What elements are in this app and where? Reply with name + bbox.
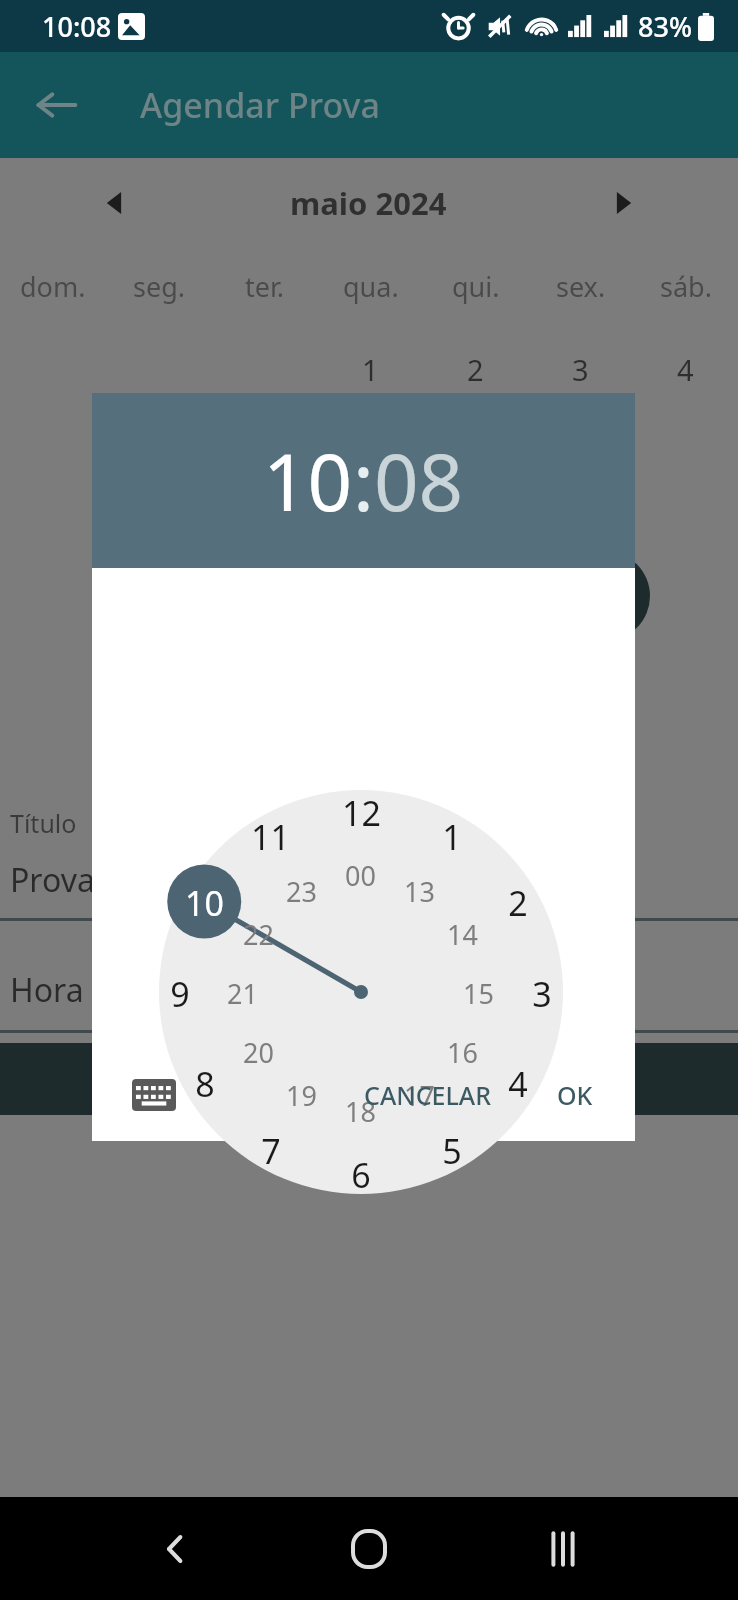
button[interactable]: Next month xyxy=(600,180,646,226)
button[interactable]: 20 xyxy=(242,1034,275,1068)
staticText: 22 xyxy=(243,916,274,950)
button[interactable]: 4 xyxy=(507,1061,528,1104)
staticText: dom. xyxy=(20,268,86,305)
button[interactable]: 19 xyxy=(285,1077,318,1111)
button[interactable]: 2 xyxy=(507,880,528,923)
staticText: ter. xyxy=(245,268,285,305)
staticText: 20 xyxy=(243,1034,274,1068)
button[interactable]: 12 xyxy=(340,790,382,833)
button[interactable]: 10 xyxy=(183,880,225,923)
staticText: 83% xyxy=(638,8,692,45)
button[interactable]: 22 xyxy=(242,916,275,950)
button[interactable]: OK xyxy=(541,1066,609,1124)
button[interactable]: Switch to keyboard input xyxy=(128,1073,180,1117)
staticText: 5 xyxy=(442,1128,462,1171)
button[interactable]: 11 xyxy=(249,814,291,857)
staticText: 8 xyxy=(195,1061,215,1104)
staticText: 15 xyxy=(463,975,494,1009)
staticText: 13 xyxy=(404,873,435,907)
staticText: 17 xyxy=(404,1077,435,1111)
staticText: 16 xyxy=(447,1034,478,1068)
button[interactable]: Recent apps xyxy=(528,1514,598,1584)
button[interactable]: 1 xyxy=(441,814,462,857)
staticText: sáb. xyxy=(660,268,712,305)
button[interactable]: 6 xyxy=(350,1152,371,1195)
button[interactable]: 23 xyxy=(285,873,318,907)
button[interactable]: 21 xyxy=(226,975,259,1009)
button[interactable]: CANCELAR xyxy=(348,1066,507,1124)
staticText: 1 xyxy=(442,814,462,857)
button[interactable]: Previous month xyxy=(92,180,138,226)
staticText: qui. xyxy=(452,268,500,305)
button[interactable]: Back xyxy=(140,1514,210,1584)
staticText: maio 2024 xyxy=(290,182,447,224)
button[interactable]: 00 xyxy=(344,857,377,891)
staticText: OK xyxy=(557,1078,593,1112)
staticText: qua. xyxy=(343,268,399,305)
staticText: 10 xyxy=(185,880,224,923)
staticText: Hora xyxy=(10,968,84,1012)
staticText: 00 xyxy=(345,857,376,891)
staticText: 18 xyxy=(345,1093,376,1127)
staticText: 4 xyxy=(508,1061,528,1104)
button[interactable]: 14 xyxy=(446,916,479,950)
staticText: seg. xyxy=(133,268,186,305)
staticText: 12 xyxy=(342,790,381,833)
staticText: 21 xyxy=(227,975,258,1009)
button[interactable]: 7 xyxy=(260,1128,281,1171)
button[interactable]: 13 xyxy=(403,873,436,907)
button[interactable]: 08 xyxy=(374,428,464,534)
button[interactable]: 16 xyxy=(446,1034,479,1068)
staticText: 1 xyxy=(362,350,379,389)
button[interactable]: 18 xyxy=(344,1093,377,1127)
button[interactable]: 5 xyxy=(441,1128,462,1171)
button[interactable]: 9 xyxy=(169,971,190,1014)
staticText: 3 xyxy=(572,350,589,389)
staticText: Título xyxy=(10,806,77,840)
staticText: 2 xyxy=(508,880,528,923)
staticText: 4 xyxy=(677,350,694,389)
button[interactable]: 10 xyxy=(263,428,353,534)
staticText: CANCELAR xyxy=(364,1078,491,1112)
button[interactable]: 8 xyxy=(194,1061,215,1104)
button[interactable]: Home xyxy=(334,1514,404,1584)
staticText: Agendar Prova xyxy=(140,82,380,128)
staticText: Prova xyxy=(10,858,95,902)
button[interactable]: 17 xyxy=(403,1077,436,1111)
staticText: 10:08 xyxy=(42,8,112,45)
button[interactable]: 15 xyxy=(462,975,495,1009)
staticText: 11 xyxy=(251,814,290,857)
staticText: 10 xyxy=(263,428,353,534)
button[interactable]: 3 xyxy=(531,971,552,1014)
staticText: 6 xyxy=(351,1152,371,1195)
button[interactable]: Back xyxy=(26,75,86,135)
staticText: 23 xyxy=(286,873,317,907)
staticText: 19 xyxy=(286,1077,317,1111)
staticText: 9 xyxy=(170,971,190,1014)
staticText: sex. xyxy=(556,268,606,305)
staticText: 3 xyxy=(532,971,552,1014)
staticText: 7 xyxy=(261,1128,281,1171)
staticText: 2 xyxy=(467,350,484,389)
staticText: 14 xyxy=(447,916,478,950)
button[interactable]: Add xyxy=(560,551,650,641)
staticText: : xyxy=(353,428,374,534)
staticText: 08 xyxy=(374,428,464,534)
